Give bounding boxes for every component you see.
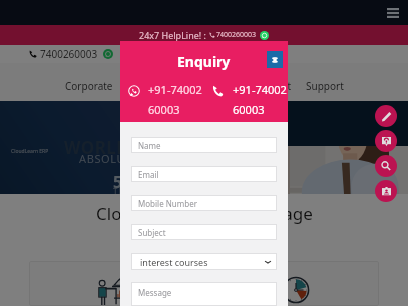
staticText: CloudLearn ERP Advantage	[96, 202, 313, 225]
staticText: 60003	[233, 102, 265, 117]
button[interactable]: interest courses	[131, 253, 277, 270]
button[interactable]: Profile	[375, 180, 397, 202]
button[interactable]: Contact	[248, 75, 299, 97]
staticText: Corporate	[65, 79, 113, 93]
staticText: Contact	[255, 79, 292, 93]
staticText: Certifications	[179, 79, 241, 93]
button[interactable]: Courses	[120, 75, 172, 97]
staticText: Name	[138, 140, 161, 151]
staticText: Email	[138, 169, 159, 180]
button[interactable]	[213, 261, 379, 306]
staticText: CloudLearn ERP	[11, 148, 49, 155]
button[interactable]: +91-74002	[120, 82, 204, 117]
staticText: WORLD CLASS	[64, 136, 188, 159]
button[interactable]: Help	[375, 130, 397, 152]
staticText: Support	[306, 79, 344, 93]
staticText: TRAIN	[113, 186, 143, 194]
staticText: +91-74002	[148, 82, 202, 97]
button[interactable]: 7400260003	[122, 47, 206, 61]
button[interactable]: Message	[131, 282, 277, 306]
staticText: 7400260003	[133, 47, 191, 61]
staticText: Courses	[127, 79, 165, 93]
staticText: ABSOLUTELY	[79, 151, 152, 166]
button[interactable]: Close	[267, 51, 283, 68]
staticText: 60003	[148, 102, 180, 117]
staticText: 7400260003	[40, 47, 98, 61]
button[interactable]	[29, 261, 195, 306]
staticText: 7400260003	[216, 30, 257, 40]
button[interactable]: Enquire	[375, 105, 397, 127]
staticText: +91-74002	[233, 82, 287, 97]
staticText: 5000	[113, 171, 150, 193]
staticText: 24x7 HelpLine! :	[139, 29, 209, 41]
button[interactable]: Email	[131, 166, 277, 182]
staticText: Enquiry	[177, 52, 231, 71]
staticText: interest courses	[140, 256, 208, 268]
button[interactable]: Subject	[131, 224, 277, 240]
button[interactable]: Certifications	[172, 75, 248, 97]
button[interactable]: Corporate	[58, 75, 120, 97]
button[interactable]: +91-74002	[204, 82, 288, 117]
button[interactable]: Menu	[384, 4, 402, 22]
button[interactable]: 7400260003	[29, 47, 113, 61]
staticText: Mobile Number	[138, 198, 197, 209]
button[interactable]: Name	[131, 137, 277, 153]
staticText: Message	[138, 287, 172, 298]
staticText: Subject	[138, 227, 166, 238]
button[interactable]: Search	[375, 155, 397, 177]
button[interactable]: Support	[299, 75, 351, 97]
button[interactable]: Mobile Number	[131, 195, 277, 211]
